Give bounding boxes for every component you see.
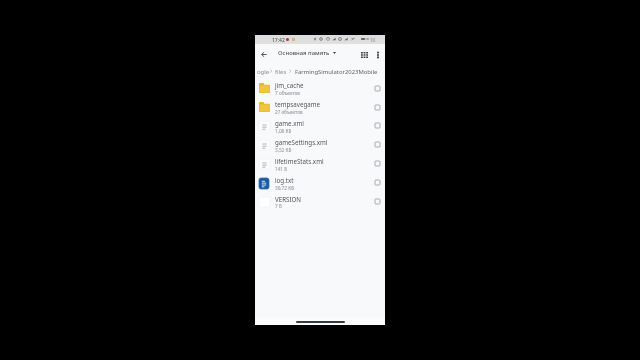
button[interactable]: Select item — [371, 176, 384, 189]
button[interactable]: Select item — [371, 157, 384, 170]
staticText: 7 объектов — [275, 90, 300, 96]
staticText: Основная память — [278, 49, 330, 57]
staticText: lifetimeStats.xml — [275, 157, 324, 165]
staticText: 141 Б — [275, 166, 288, 172]
button[interactable] — [255, 173, 385, 192]
staticText: log.txt — [275, 176, 294, 184]
staticText: files — [275, 68, 287, 76]
staticText: 3,52 КБ — [275, 147, 292, 153]
button[interactable] — [255, 79, 385, 98]
staticText: 10 — [370, 37, 376, 43]
button[interactable] — [255, 116, 385, 135]
button[interactable]: Select item — [371, 138, 384, 151]
button[interactable]: Основная память — [278, 49, 336, 57]
button[interactable]: Select item — [371, 119, 384, 132]
button[interactable] — [255, 154, 385, 173]
staticText: 1,08 КБ — [275, 128, 292, 134]
button[interactable] — [255, 98, 385, 117]
staticText: game.xml — [275, 119, 304, 127]
staticText: 7 Б — [275, 203, 282, 209]
staticText: tempsavegame — [275, 100, 320, 108]
staticText: FarmingSimulator2023Mobile — [295, 68, 378, 76]
staticText: jim_cache — [275, 81, 304, 89]
staticText: gameSettings.xml — [275, 138, 328, 146]
staticText: 17:42 — [272, 37, 285, 44]
button[interactable]: More options — [372, 47, 384, 62]
button[interactable]: Select item — [371, 101, 384, 114]
button[interactable] — [255, 135, 385, 154]
button[interactable]: Select item — [371, 82, 384, 95]
button[interactable]: Back — [257, 47, 271, 62]
button[interactable]: Select item — [371, 195, 384, 208]
staticText: VERSION — [275, 195, 302, 203]
button[interactable] — [255, 192, 385, 211]
staticText: 27 объектов — [275, 109, 303, 115]
staticText: 30,72 КБ — [275, 185, 295, 191]
button[interactable]: Grid view — [356, 47, 372, 62]
staticText: ogle — [257, 68, 270, 76]
